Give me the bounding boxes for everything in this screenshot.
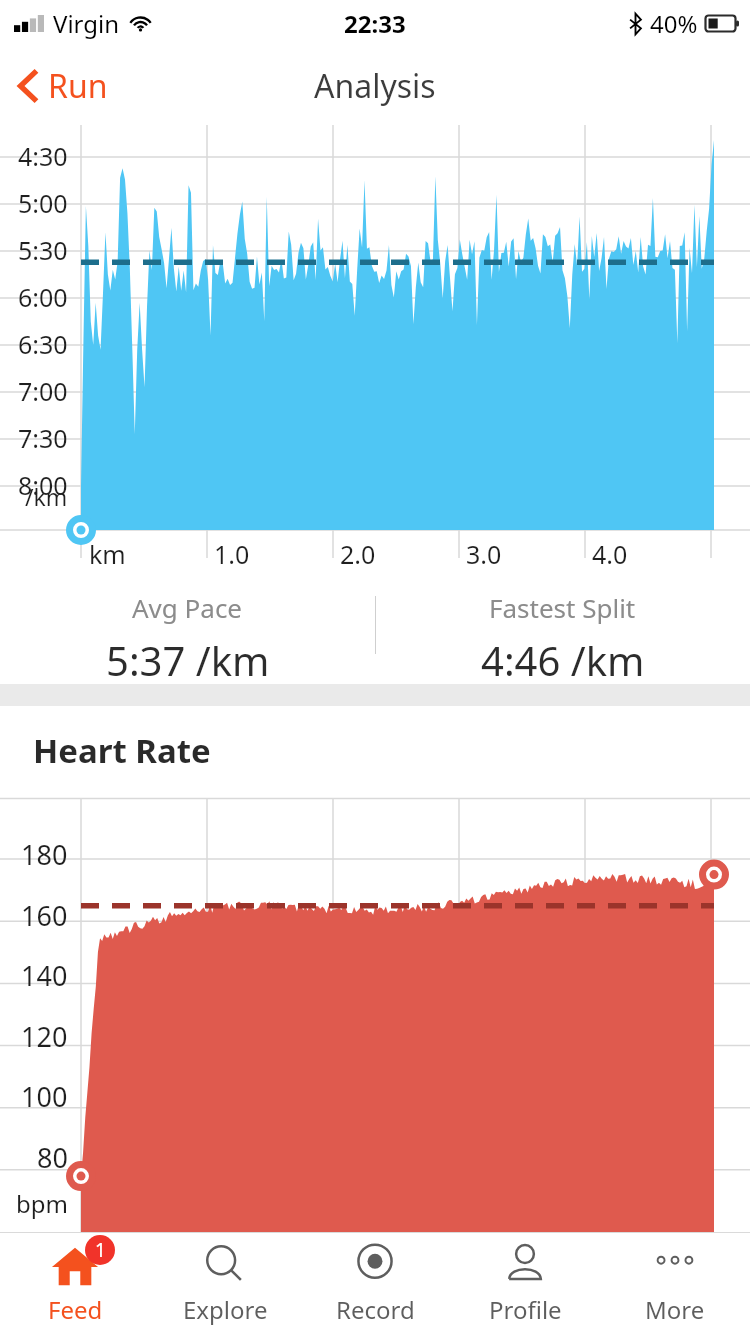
staticText: 80 — [37, 1139, 68, 1176]
staticText: 6:30 — [18, 327, 68, 361]
staticText: 5:00 — [18, 186, 68, 220]
staticText: 120 — [21, 1018, 68, 1055]
staticText: 5:37 /km — [106, 633, 270, 684]
staticText: 1 — [95, 1237, 106, 1263]
staticText: Feed — [48, 1293, 103, 1326]
staticText: Record — [336, 1293, 415, 1326]
button[interactable]: Explore — [150, 1233, 300, 1334]
staticText: 140 — [21, 957, 68, 994]
button[interactable]: Run — [0, 54, 126, 118]
staticText: Explore — [183, 1293, 268, 1326]
staticText: 1.0 — [214, 537, 250, 571]
staticText: More — [645, 1293, 705, 1326]
staticText: 5:30 — [18, 233, 68, 267]
staticText: Analysis — [314, 64, 436, 108]
staticText: Fastest Split — [489, 590, 636, 625]
staticText: 3.0 — [466, 537, 502, 571]
staticText: Virgin — [53, 7, 120, 40]
button[interactable]: Fastest Split — [375, 566, 750, 684]
staticText: 4:30 — [18, 139, 68, 173]
button[interactable]: Record — [300, 1233, 450, 1334]
staticText: 6:00 — [18, 280, 68, 314]
button[interactable]: Profile — [450, 1233, 600, 1334]
staticText: 180 — [21, 836, 68, 873]
staticText: 22:33 — [344, 7, 406, 40]
staticText: 4:46 /km — [481, 633, 645, 684]
staticText: 7:00 — [18, 374, 68, 408]
staticText: 7:30 — [18, 421, 68, 455]
staticText: Heart Rate — [33, 728, 211, 773]
staticText: 4.0 — [592, 537, 628, 571]
staticText: Profile — [489, 1293, 562, 1326]
staticText: /km — [25, 481, 68, 512]
staticText: bpm — [16, 1187, 68, 1220]
staticText: 2.0 — [340, 537, 376, 571]
staticText: 100 — [21, 1078, 68, 1115]
staticText: 8:00 — [18, 468, 68, 502]
staticText: km — [89, 537, 126, 571]
button[interactable]: Feed — [0, 1233, 150, 1334]
staticText: 160 — [21, 897, 68, 934]
button[interactable]: More — [600, 1233, 750, 1334]
staticText: Avg Pace — [132, 590, 243, 625]
button[interactable]: Avg Pace — [0, 566, 375, 684]
staticText: 40% — [650, 7, 698, 40]
staticText: Run — [48, 64, 108, 108]
